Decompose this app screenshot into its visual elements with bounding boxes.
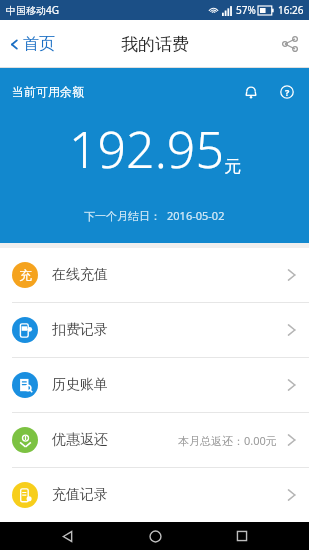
button[interactable]: 扣费记录 (0, 303, 309, 357)
staticText: 当前可用余额 (12, 84, 84, 99)
button[interactable]: 历史账单 (0, 358, 309, 412)
button[interactable]: Help (275, 80, 299, 104)
staticText: 本月总返还：0.00元 (178, 433, 277, 448)
staticText: 192.95 (69, 115, 224, 183)
staticText: 57% (236, 3, 256, 17)
staticText: 在线充值 (52, 266, 108, 284)
staticText: 历史账单 (52, 376, 108, 394)
staticText: 充 (19, 267, 32, 283)
button[interactable]: 充值记录 (0, 468, 309, 522)
staticText: 充值记录 (52, 486, 108, 504)
button[interactable]: Home (135, 522, 175, 550)
staticText: 16:26 (278, 3, 304, 17)
button[interactable]: 首页 (0, 28, 65, 60)
staticText: 下一个月结日： (84, 209, 161, 223)
staticText: 元 (224, 156, 241, 177)
button[interactable]: Back (47, 522, 87, 550)
button[interactable]: Notifications (239, 80, 263, 104)
staticText: 2016-05-02 (167, 208, 225, 223)
button[interactable]: Share (271, 25, 309, 63)
button[interactable]: 优惠返还 (0, 413, 309, 467)
staticText: 中国移动4G (6, 3, 59, 17)
staticText: 扣费记录 (52, 321, 108, 339)
staticText: 优惠返还 (52, 431, 108, 449)
button[interactable]: 充 (0, 248, 309, 302)
button[interactable]: Recents (222, 522, 262, 550)
staticText: 我的话费 (121, 34, 189, 55)
staticText: ? (285, 86, 290, 98)
staticText: 首页 (23, 34, 55, 54)
